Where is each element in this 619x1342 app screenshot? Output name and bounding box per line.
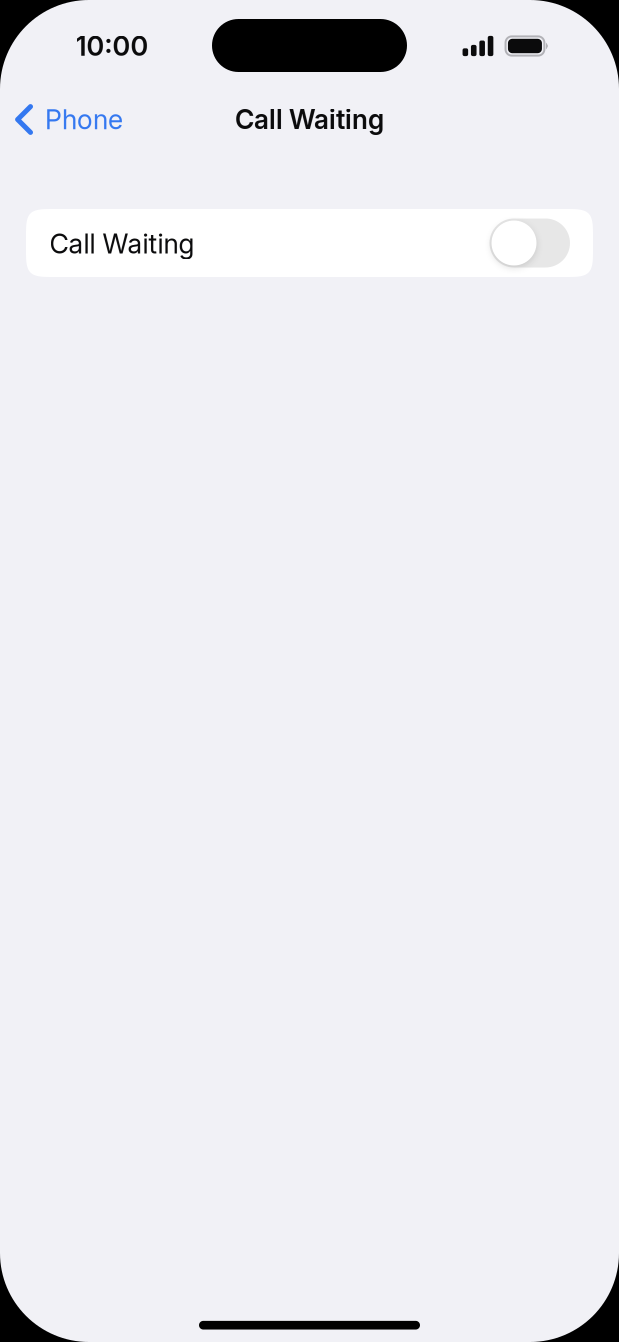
staticText: Call Waiting	[235, 103, 384, 135]
staticText: 10:00	[75, 30, 148, 62]
staticText: Phone	[45, 103, 123, 136]
staticText: Call Waiting	[49, 228, 194, 260]
button[interactable]: Phone	[0, 91, 137, 147]
button[interactable]: Call Waiting	[26, 209, 593, 277]
